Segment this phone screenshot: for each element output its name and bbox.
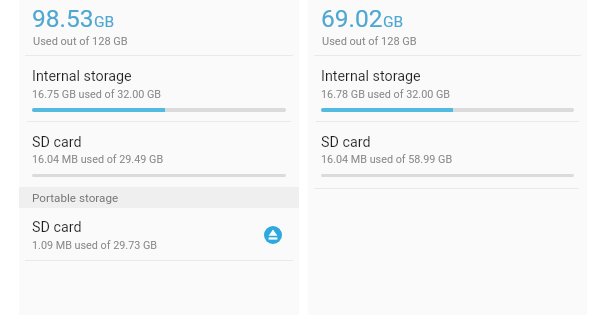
staticText: 1.09 MB used of 29.73 GB <box>32 239 158 252</box>
button[interactable]: 69.02 <box>308 0 587 55</box>
button[interactable]: 98.53 <box>19 0 299 55</box>
staticText: 16.75 GB used of 32.00 GB <box>32 88 162 101</box>
staticText: Used out of 128 GB <box>322 35 417 48</box>
staticText: Portable storage <box>32 191 119 205</box>
staticText: SD card <box>32 219 82 236</box>
staticText: Used out of 128 GB <box>33 35 128 48</box>
button[interactable]: SD card <box>19 122 299 187</box>
staticText: SD card <box>321 134 371 151</box>
button[interactable] <box>264 226 282 244</box>
staticText: 16.04 MB used of 29.49 GB <box>32 153 164 166</box>
staticText: Internal storage <box>321 68 421 85</box>
staticText: 98.53 <box>32 4 94 33</box>
button[interactable]: Internal storage <box>308 56 587 121</box>
staticText: SD card <box>32 134 82 151</box>
staticText: 16.04 MB used of 58.99 GB <box>321 153 453 166</box>
button[interactable]: SD card <box>308 122 587 187</box>
staticText: 69.02 <box>321 4 383 33</box>
button[interactable]: SD card <box>19 208 299 261</box>
staticText: GB <box>94 13 115 31</box>
staticText: GB <box>383 13 404 31</box>
button[interactable]: Internal storage <box>19 56 299 121</box>
staticText: Internal storage <box>32 68 132 85</box>
staticText: 16.78 GB used of 32.00 GB <box>321 88 451 101</box>
